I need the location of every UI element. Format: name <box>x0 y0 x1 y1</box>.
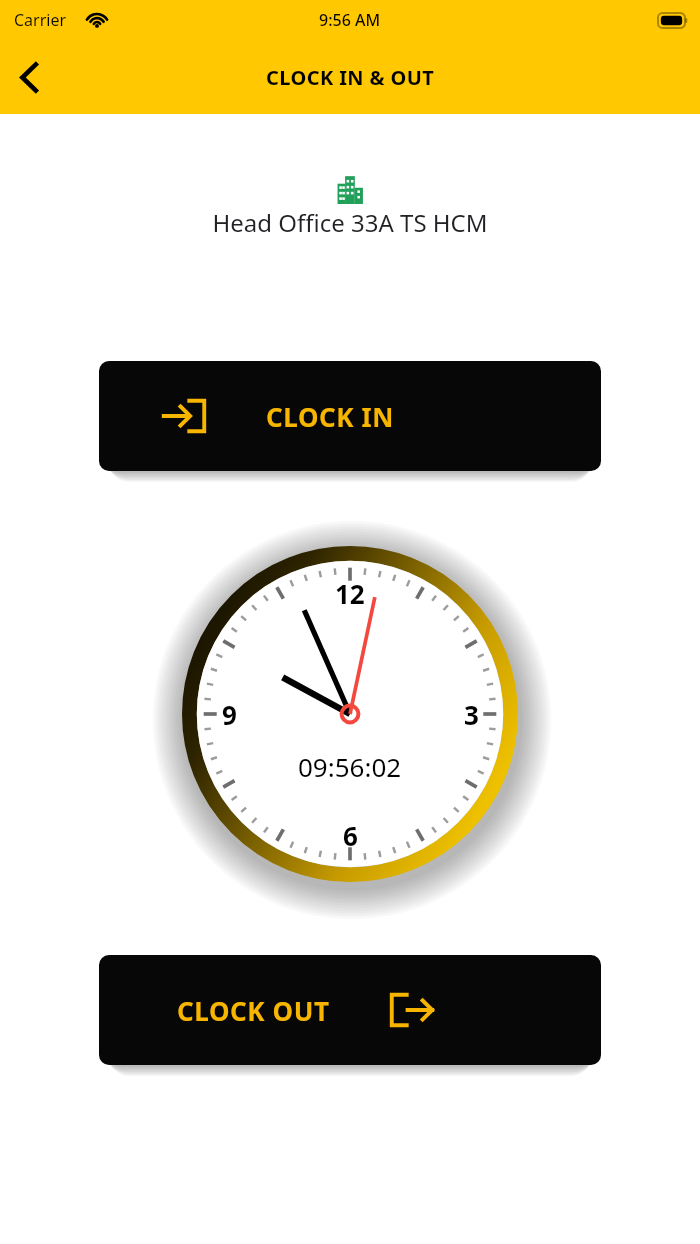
staticText: CLOCK IN & OUT <box>266 64 435 91</box>
staticText: 9 <box>222 697 237 732</box>
button[interactable]: CLOCK OUT <box>99 955 601 1065</box>
staticText: 6 <box>343 818 358 853</box>
button[interactable]: Back <box>0 48 58 106</box>
staticText: Head Office 33A TS HCM <box>0 206 700 239</box>
button[interactable]: CLOCK IN <box>99 361 601 471</box>
staticText: Carrier <box>14 9 67 31</box>
staticText: CLOCK OUT <box>177 993 330 1028</box>
staticText: 12 <box>335 576 365 611</box>
staticText: 3 <box>464 697 479 732</box>
staticText: 9:56 AM <box>319 9 381 31</box>
staticText: CLOCK IN <box>266 399 395 434</box>
staticText: 09:56:02 <box>298 749 402 784</box>
